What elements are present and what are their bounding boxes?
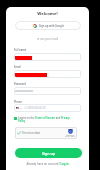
button[interactable]: I agree to the Terms of Service and Priv… xyxy=(18,116,77,122)
button[interactable]: Sign up with Google xyxy=(15,21,81,30)
staticText: Full name xyxy=(14,48,27,52)
staticText: Welcome! xyxy=(6,11,89,17)
staticText: Privacy - Terms xyxy=(65,136,75,138)
staticText: I agree to the Terms of Service and Priv… xyxy=(18,116,77,122)
staticText: or use your email xyxy=(6,37,89,41)
button[interactable] xyxy=(14,53,81,61)
staticText: I'm not a robot xyxy=(22,131,41,135)
staticText: Sign up with Google xyxy=(39,24,64,28)
button[interactable]: Sign up xyxy=(15,148,82,158)
button[interactable]: Already have an account? Log in xyxy=(6,162,89,166)
button[interactable]: Accept terms xyxy=(14,117,17,120)
staticText: Email xyxy=(14,65,21,69)
staticText: Already have an account? Log in xyxy=(26,162,69,166)
staticText: reCAPTCHA xyxy=(66,134,75,136)
button[interactable] xyxy=(14,87,81,95)
staticText: Password xyxy=(14,82,26,86)
button[interactable] xyxy=(14,70,81,78)
staticText: +1 (201) 555-0123 xyxy=(24,106,46,110)
button[interactable]: +1 (201) 555-0123 xyxy=(14,104,81,112)
staticText: Phone xyxy=(14,100,22,104)
button[interactable]: I'm not a robot xyxy=(15,127,77,139)
staticText: Sign up xyxy=(42,151,56,156)
